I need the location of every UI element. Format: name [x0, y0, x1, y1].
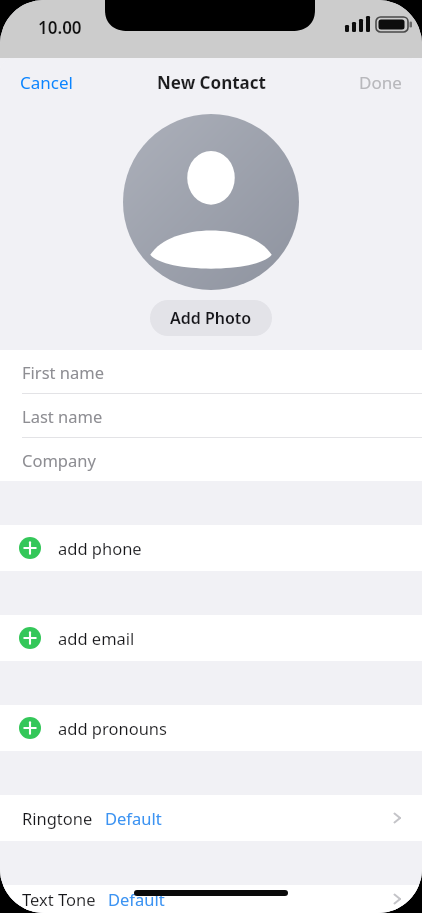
staticText: New Contact [157, 71, 266, 94]
button[interactable]: Add Photo [150, 300, 272, 336]
staticText: Last name [22, 405, 103, 427]
staticText: Default [108, 888, 165, 910]
staticText: Company [22, 449, 96, 471]
staticText: First name [22, 361, 104, 383]
button[interactable]: Company [0, 438, 422, 481]
staticText: Add Photo [170, 307, 252, 329]
staticText: Default [105, 807, 162, 829]
button[interactable]: Last name [0, 394, 422, 437]
button[interactable]: add phone [0, 525, 422, 571]
staticText: Ringtone [22, 807, 93, 829]
staticText: 10.00 [38, 16, 82, 39]
staticText: add email [58, 627, 135, 649]
staticText: add phone [58, 537, 142, 559]
button[interactable]: First name [0, 350, 422, 393]
button[interactable]: Done [347, 63, 414, 102]
button[interactable]: add pronouns [0, 705, 422, 751]
staticText: Cancel [20, 71, 73, 94]
staticText: Done [359, 71, 402, 94]
button[interactable]: Ringtone [0, 795, 422, 841]
button[interactable]: Text Tone [0, 885, 422, 913]
button[interactable]: add email [0, 615, 422, 661]
button[interactable]: Contact photo [123, 114, 299, 290]
button[interactable]: Cancel [8, 63, 85, 102]
staticText: Text Tone [22, 888, 96, 910]
staticText: add pronouns [58, 717, 167, 739]
